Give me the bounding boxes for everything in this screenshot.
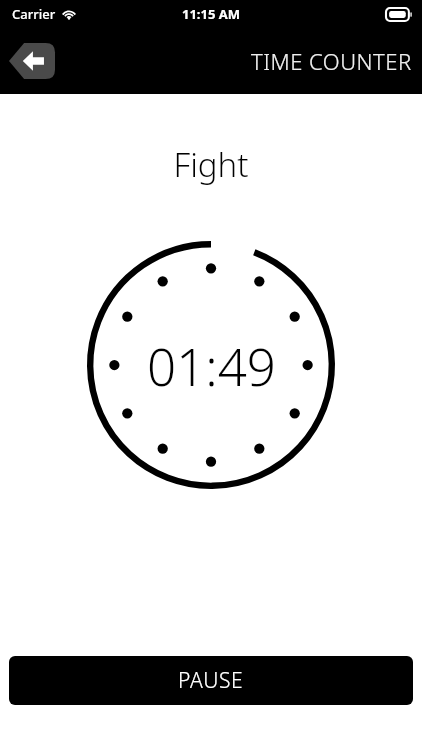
staticText: Fight xyxy=(0,142,422,187)
staticText: Carrier xyxy=(12,5,56,23)
button[interactable]: PAUSE xyxy=(9,656,413,705)
staticText: PAUSE xyxy=(178,666,244,695)
staticText: 11:15 AM xyxy=(182,5,241,23)
staticText: TIME COUNTER xyxy=(251,46,412,76)
button[interactable]: Back xyxy=(9,43,55,79)
staticText: 01:49 xyxy=(147,331,276,400)
